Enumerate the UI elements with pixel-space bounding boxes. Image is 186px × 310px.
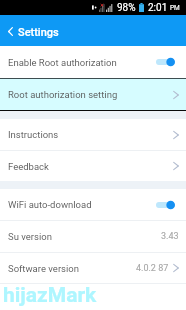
button[interactable]: Enable Root authorization [0,46,186,78]
button[interactable]: Software version [0,253,186,283]
button[interactable]: Root authorization setting [0,79,186,110]
staticText: Instructions [8,129,59,140]
staticText: WiFi auto-download [8,199,92,210]
button[interactable]: WiFi auto-download [0,189,186,220]
staticText: Feedback [8,161,49,172]
button[interactable]: Instructions [0,119,186,150]
staticText: Enable Root authorization [8,57,117,68]
staticText: Software version [8,263,79,274]
button[interactable]: Feedback [0,151,186,181]
staticText: 2:01 [148,2,168,14]
staticText: Su version [8,231,52,242]
staticText: Settings [18,26,59,39]
staticText: 98% [117,2,136,14]
staticText: hijazMark [3,283,97,308]
staticText: Root authorization setting [8,89,118,100]
button[interactable]: Back [0,15,20,46]
button[interactable]: Su version [0,221,186,252]
staticText: 3.43 [161,231,179,242]
staticText: PM [170,4,180,12]
staticText: 4.0.2 87 [136,263,169,274]
